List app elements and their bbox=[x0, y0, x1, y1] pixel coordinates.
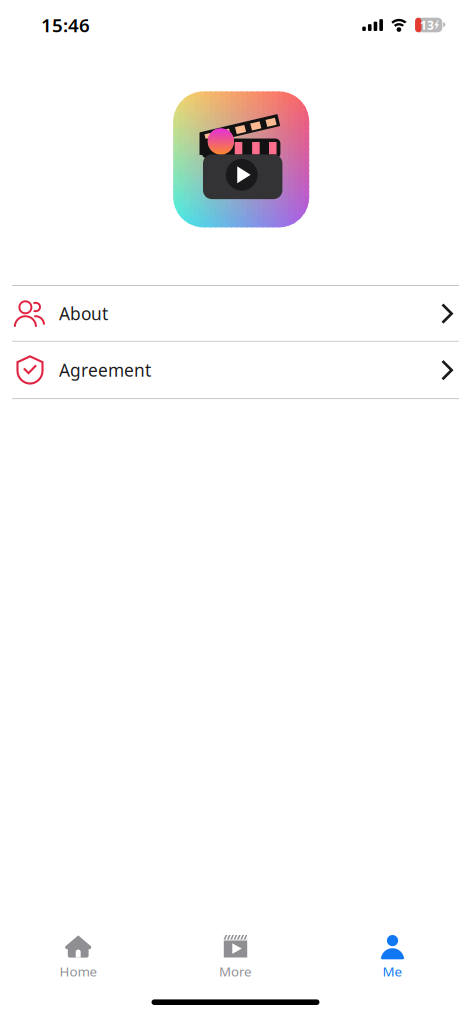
button[interactable]: About bbox=[0, 286, 471, 341]
staticText: About bbox=[59, 302, 108, 325]
button[interactable]: Home tab bbox=[0, 924, 157, 986]
staticText: Agreement bbox=[59, 358, 151, 381]
staticText: 13 bbox=[420, 17, 434, 33]
button[interactable]: Me tab bbox=[314, 924, 471, 986]
button[interactable]: Agreement bbox=[0, 342, 471, 398]
staticText: 15:46 bbox=[41, 13, 90, 37]
staticText: More bbox=[219, 962, 252, 980]
button[interactable]: More tab bbox=[157, 924, 314, 986]
staticText: Me bbox=[382, 962, 402, 980]
staticText: Home bbox=[59, 962, 97, 980]
